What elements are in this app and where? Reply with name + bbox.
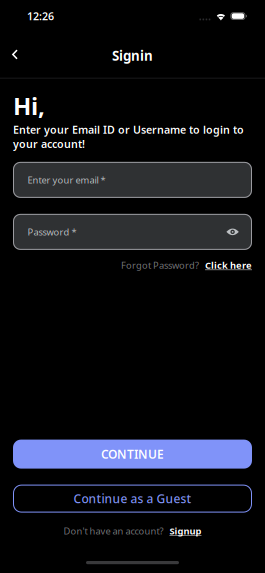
staticText: Signup (169, 525, 201, 537)
button[interactable]: CONTINUE (13, 440, 252, 469)
staticText: Password * (27, 226, 76, 238)
staticText: CONTINUE (101, 446, 164, 462)
staticText: Enter your Email ID or Username to login… (13, 122, 244, 151)
button[interactable]: Signup (169, 525, 201, 537)
staticText: Signin (112, 47, 153, 64)
staticText: Click here (205, 259, 252, 271)
button[interactable]: Click here (205, 259, 252, 271)
staticText: Hi, (13, 90, 45, 122)
button[interactable]: Continue as a Guest (13, 485, 252, 513)
staticText: Don't have an account? (63, 525, 163, 537)
staticText: 12:26 (27, 9, 54, 23)
button[interactable]: Password * (13, 214, 252, 250)
button[interactable]: Enter your email * (13, 162, 252, 198)
staticText: Enter your email * (27, 174, 105, 186)
staticText: Continue as a Guest (73, 491, 191, 506)
staticText: Forgot Password? (121, 259, 199, 271)
button[interactable]: Back (3, 42, 27, 69)
